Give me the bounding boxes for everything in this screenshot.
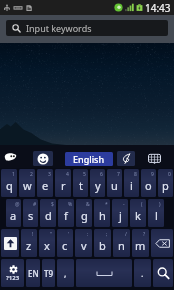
staticText: .	[141, 267, 144, 279]
staticText: ;	[106, 231, 108, 238]
button[interactable]: 4	[55, 169, 71, 197]
button[interactable]: %	[58, 199, 74, 227]
button[interactable]: ;	[94, 229, 111, 257]
staticText: &	[86, 201, 90, 208]
button[interactable]: Input keywords	[6, 20, 168, 36]
button[interactable]: 9	[141, 169, 156, 197]
button[interactable]: Settings and symbols	[1, 259, 24, 287]
staticText: u	[111, 178, 118, 193]
staticText: *	[105, 201, 108, 208]
button[interactable]: :	[75, 229, 92, 257]
staticText: 0	[168, 171, 171, 178]
button[interactable]: '	[57, 229, 73, 257]
staticText: )	[159, 201, 161, 208]
staticText: -	[123, 201, 125, 208]
staticText: m	[135, 238, 146, 253]
button[interactable]: "	[39, 229, 55, 257]
staticText: i	[130, 178, 133, 193]
staticText: g	[81, 208, 88, 223]
staticText: k	[135, 208, 141, 223]
staticText: c	[62, 238, 68, 253]
button[interactable]: T9	[42, 259, 55, 287]
staticText: y	[95, 178, 101, 193]
button[interactable]: *	[94, 199, 110, 227]
staticText: @	[15, 201, 20, 208]
staticText: f	[64, 208, 68, 223]
button[interactable]: $	[40, 199, 56, 227]
staticText: d	[45, 208, 52, 223]
staticText: %	[68, 201, 73, 208]
button[interactable]: ,	[57, 259, 74, 287]
staticText: 14:43	[145, 1, 171, 15]
staticText: !	[32, 231, 34, 238]
staticText: 6	[100, 171, 103, 178]
button[interactable]: Handwriting	[117, 151, 135, 166]
staticText: l	[155, 208, 158, 223]
button[interactable]: ?	[132, 229, 149, 257]
button[interactable]: 7	[107, 169, 122, 197]
staticText: English	[73, 153, 105, 165]
staticText: 1	[12, 171, 15, 178]
staticText: s	[28, 208, 34, 223]
staticText: h	[99, 208, 106, 223]
button[interactable]: Search	[153, 259, 173, 287]
staticText: x	[44, 238, 50, 253]
staticText: ?	[143, 231, 146, 238]
button[interactable]: 0	[158, 169, 173, 197]
staticText: $	[51, 201, 54, 208]
staticText: e	[42, 178, 49, 193]
staticText: r	[61, 178, 66, 193]
staticText: p	[162, 178, 169, 193]
button[interactable]: 2	[19, 169, 35, 197]
staticText: 3	[48, 171, 51, 178]
button[interactable]: Emoji	[33, 151, 53, 166]
staticText: 7	[117, 171, 120, 178]
staticText: n	[118, 238, 125, 253]
button[interactable]: .	[134, 259, 151, 287]
staticText: (	[141, 201, 143, 208]
staticText: ,	[64, 267, 67, 279]
button[interactable]: 8	[124, 169, 139, 197]
staticText: q	[6, 178, 13, 193]
button[interactable]: Keyboard layout	[146, 150, 163, 166]
button[interactable]: 6	[90, 169, 105, 197]
button[interactable]: @	[6, 199, 21, 227]
staticText: Input keywords	[26, 22, 92, 34]
button[interactable]: Space	[76, 259, 132, 287]
staticText: /	[125, 231, 127, 238]
button[interactable]: &	[76, 199, 92, 227]
staticText: j	[119, 208, 122, 223]
button[interactable]: 3	[37, 169, 53, 197]
button[interactable]: Shift	[1, 229, 19, 257]
button[interactable]: )	[148, 199, 164, 227]
staticText: T9	[44, 268, 54, 279]
staticText: "	[50, 231, 53, 238]
staticText: EN	[28, 268, 39, 279]
staticText: t	[79, 178, 83, 193]
button[interactable]: Backspace	[151, 229, 173, 257]
staticText: '	[68, 231, 70, 238]
button[interactable]: -	[112, 199, 128, 227]
button[interactable]: Voice input	[3, 151, 17, 163]
staticText: w	[23, 178, 32, 193]
staticText: ?123	[6, 274, 20, 282]
staticText: b	[99, 238, 106, 253]
staticText: o	[145, 178, 152, 193]
button[interactable]: English	[65, 152, 113, 166]
staticText: 4	[66, 171, 69, 178]
button[interactable]: 1	[1, 169, 17, 197]
staticText: :	[87, 231, 89, 238]
button[interactable]: 5	[73, 169, 88, 197]
staticText: 2	[30, 171, 33, 178]
button[interactable]: #	[23, 199, 38, 227]
staticText: 9	[151, 171, 154, 178]
button[interactable]: /	[113, 229, 130, 257]
staticText: 5	[83, 171, 86, 178]
staticText: #	[33, 201, 37, 208]
button[interactable]: (	[130, 199, 146, 227]
staticText: 8	[134, 171, 137, 178]
button[interactable]: !	[21, 229, 37, 257]
button[interactable]: EN	[26, 259, 40, 287]
staticText: v	[81, 238, 87, 253]
staticText: z	[26, 238, 32, 253]
